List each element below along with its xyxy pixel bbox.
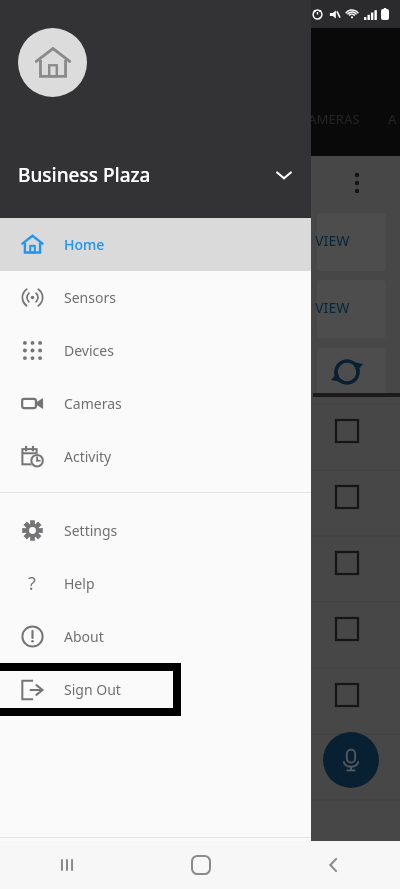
staticText: Sensors — [64, 288, 116, 307]
button[interactable]: Back — [267, 841, 400, 889]
staticText: Sign Out — [64, 680, 121, 699]
button[interactable]: Sign Out — [0, 663, 311, 716]
staticText: ? — [28, 571, 36, 596]
staticText: VIEW — [315, 231, 350, 250]
staticText: Activity — [64, 447, 112, 466]
staticText: Home — [64, 235, 105, 254]
staticText: Help — [64, 574, 95, 593]
button[interactable]: Devices — [0, 324, 311, 377]
button[interactable]: Activity — [0, 430, 311, 483]
staticText: A — [388, 110, 397, 128]
staticText: Settings — [64, 521, 118, 540]
button[interactable]: Business Plaza — [0, 162, 311, 188]
button[interactable]: Sensors — [0, 271, 311, 324]
button[interactable]: Cameras — [0, 377, 311, 430]
button[interactable]: ? — [0, 557, 311, 610]
button[interactable]: Home — [0, 218, 311, 271]
staticText: Business Plaza — [18, 162, 275, 188]
button[interactable]: Settings — [0, 504, 311, 557]
staticText: TOTAL CONNECT 2.0 — [18, 856, 133, 872]
button[interactable]: Home — [134, 841, 267, 889]
staticText: VIEW — [315, 298, 350, 317]
button[interactable]: Voice command — [323, 732, 379, 788]
staticText: About — [64, 627, 104, 646]
button[interactable]: Location avatar — [18, 28, 87, 97]
button[interactable]: About — [0, 610, 311, 663]
staticText: AMERAS — [308, 110, 360, 128]
staticText: Devices — [64, 341, 114, 360]
button[interactable]: Recents — [0, 841, 134, 889]
staticText: Cameras — [64, 394, 122, 413]
